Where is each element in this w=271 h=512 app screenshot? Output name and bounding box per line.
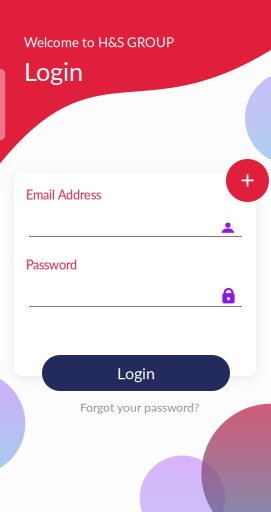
button[interactable]: Forgot your password? xyxy=(80,400,199,414)
staticText: Email Address xyxy=(26,187,101,202)
button[interactable]: Login xyxy=(42,355,230,391)
button[interactable]: Add xyxy=(226,159,269,202)
staticText: Welcome to H&S GROUP xyxy=(24,34,174,50)
staticText: Login xyxy=(117,363,155,383)
staticText: Forgot your password? xyxy=(80,400,199,414)
staticText: Password xyxy=(26,257,77,272)
staticText: Login xyxy=(24,56,83,86)
